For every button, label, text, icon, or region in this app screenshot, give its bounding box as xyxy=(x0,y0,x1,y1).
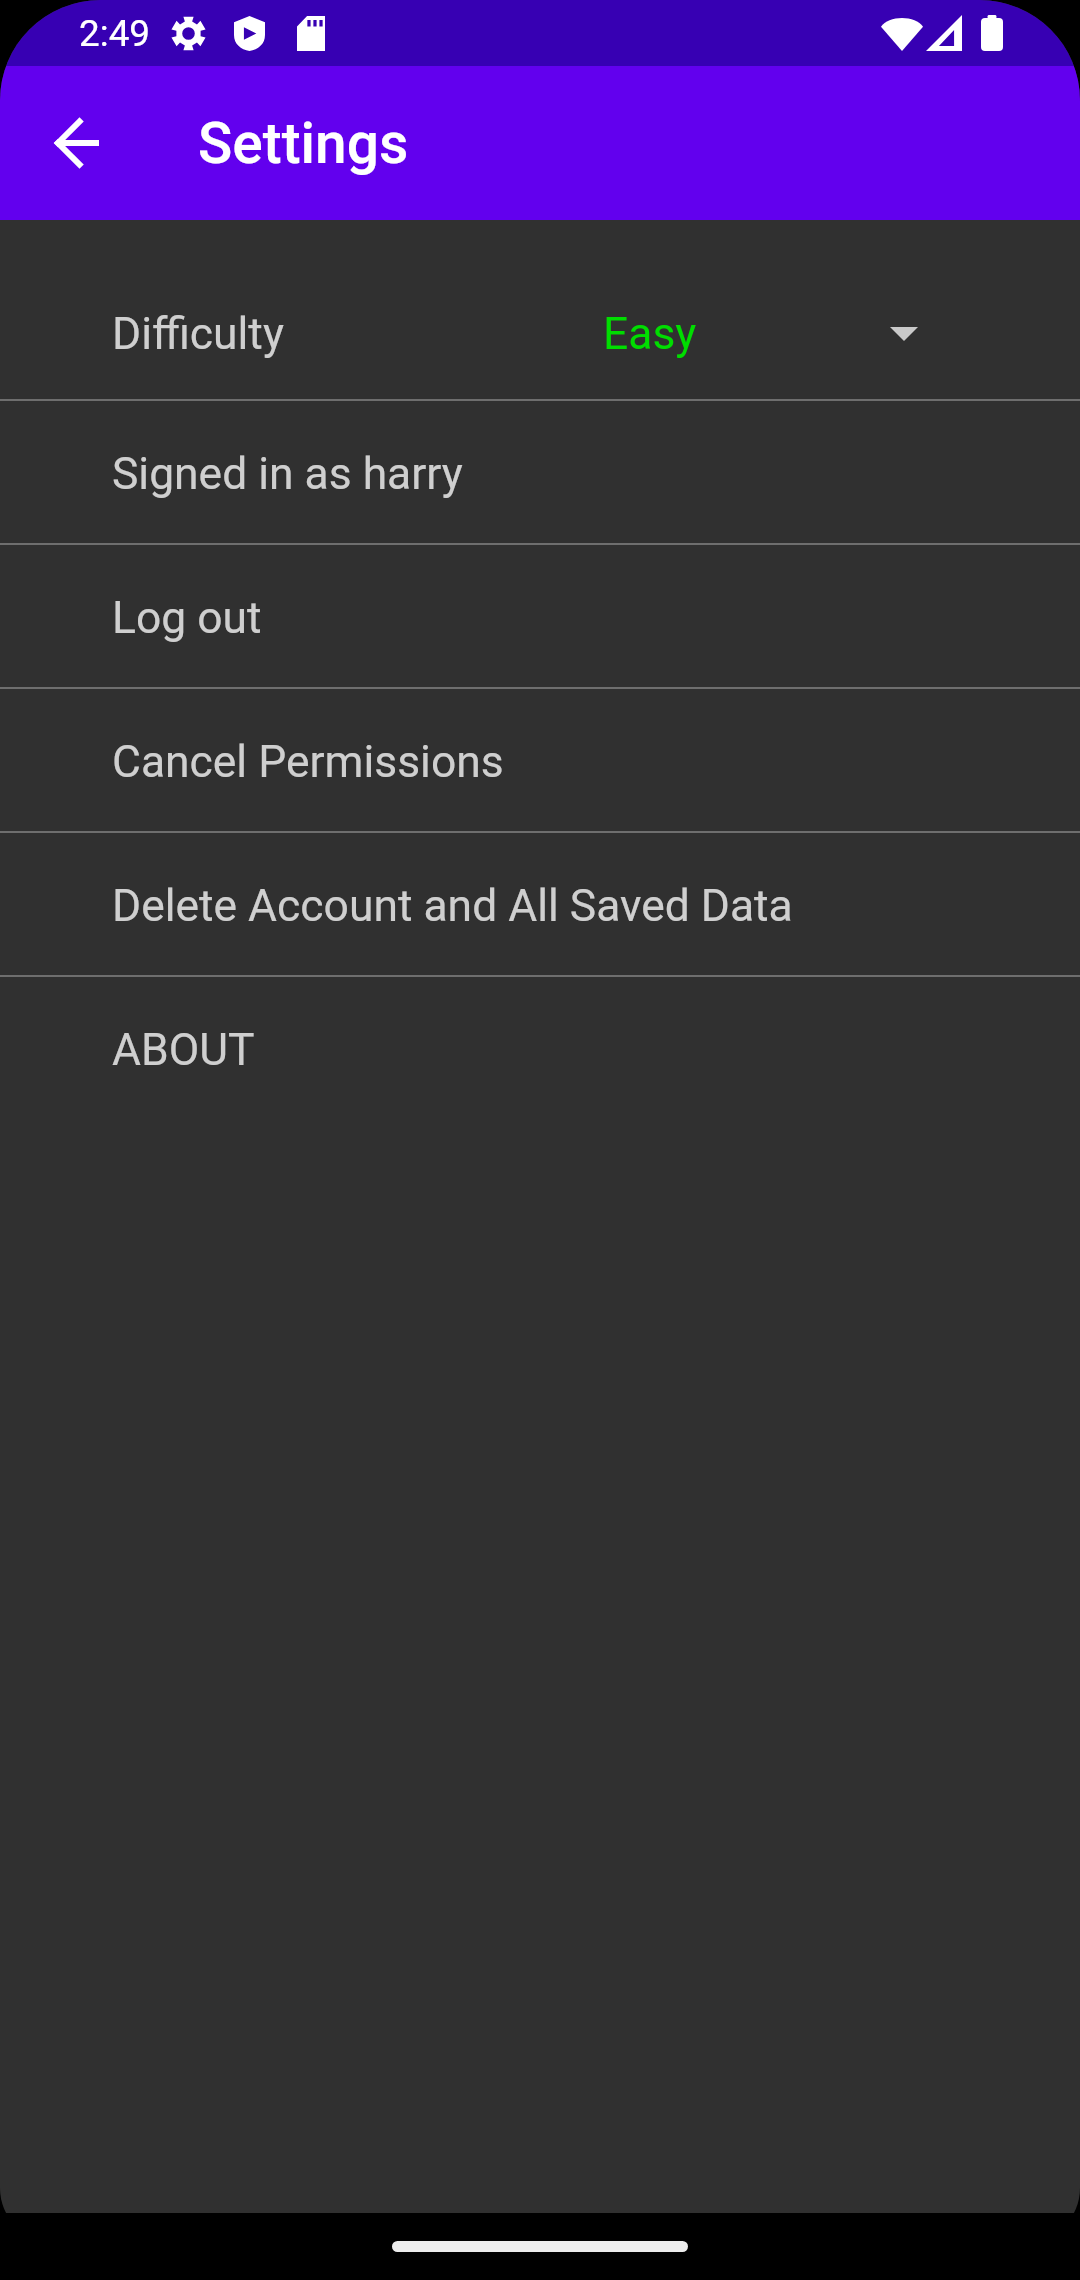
staticText: Difficulty xyxy=(112,308,284,360)
button[interactable]: Signed in as harry xyxy=(0,401,1080,543)
staticText: Cancel Permissions xyxy=(112,736,504,788)
staticText: Signed in as harry xyxy=(112,448,463,500)
staticText: Easy xyxy=(603,308,697,360)
button[interactable]: ABOUT xyxy=(0,977,1080,1119)
button[interactable]: Navigate up xyxy=(11,77,143,209)
staticText: Delete Account and All Saved Data xyxy=(112,880,793,932)
staticText: 2:49 xyxy=(79,12,151,55)
button[interactable]: Cancel Permissions xyxy=(0,689,1080,831)
button[interactable]: Difficulty xyxy=(0,220,1080,399)
button[interactable]: Delete Account and All Saved Data xyxy=(0,833,1080,975)
button[interactable]: Log out xyxy=(0,545,1080,687)
staticText: Settings xyxy=(198,110,409,177)
staticText: Log out xyxy=(112,592,262,644)
staticText: ABOUT xyxy=(112,1024,255,1076)
